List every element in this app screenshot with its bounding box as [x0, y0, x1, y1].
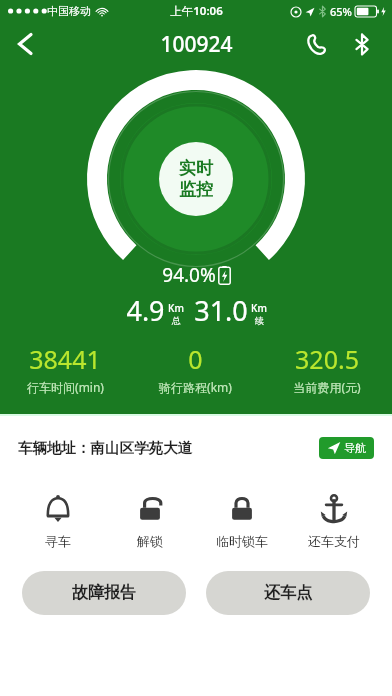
button[interactable]: 导航 [319, 437, 374, 459]
staticText: Km [251, 301, 267, 315]
staticText: 94.0% [162, 262, 216, 288]
staticText: 总 [172, 315, 181, 326]
staticText: 当前费用(元) [293, 379, 361, 395]
staticText: Km [168, 301, 184, 315]
button[interactable]: Bluetooth [342, 24, 382, 64]
button[interactable]: 故障报告 [22, 571, 186, 615]
staticText: 解锁 [137, 533, 163, 549]
button[interactable]: 解锁 [108, 490, 192, 553]
staticText: 临时锁车 [216, 533, 268, 549]
staticText: 寻车 [45, 533, 71, 549]
staticText: 还车点 [264, 583, 312, 603]
staticText: 监控 [179, 179, 213, 200]
staticText: 65% [330, 4, 352, 19]
staticText: 320.5 [295, 342, 359, 376]
button[interactable]: 320.5 [261, 342, 392, 395]
button[interactable]: 还车点 [206, 571, 370, 615]
staticText: 0 [188, 342, 203, 376]
staticText: 骑行路程(km) [159, 379, 232, 395]
staticText: 还车支付 [308, 533, 360, 549]
staticText: 4.9 [126, 292, 165, 329]
staticText: 实时 [179, 158, 213, 179]
staticText: 故障报告 [72, 583, 136, 603]
button[interactable]: 寻车 [16, 490, 100, 553]
button[interactable]: 临时锁车 [200, 490, 284, 553]
staticText: 行车时间(min) [27, 379, 104, 395]
button[interactable]: Back [0, 22, 48, 66]
staticText: 38441 [29, 342, 101, 376]
staticText: 车辆地址：南山区学苑大道 [18, 439, 192, 457]
button[interactable]: 实时 [159, 142, 233, 216]
button[interactable]: 还车支付 [292, 490, 376, 553]
staticText: 上午10:06 [170, 3, 223, 19]
button[interactable]: 38441 [0, 342, 130, 395]
staticText: 中国移动 [47, 4, 91, 18]
staticText: 31.0 [194, 292, 248, 329]
staticText: 100924 [160, 30, 233, 59]
staticText: 导航 [344, 441, 366, 455]
button[interactable]: 0 [130, 342, 261, 395]
staticText: 续 [255, 315, 264, 326]
button[interactable]: Call [296, 24, 336, 64]
